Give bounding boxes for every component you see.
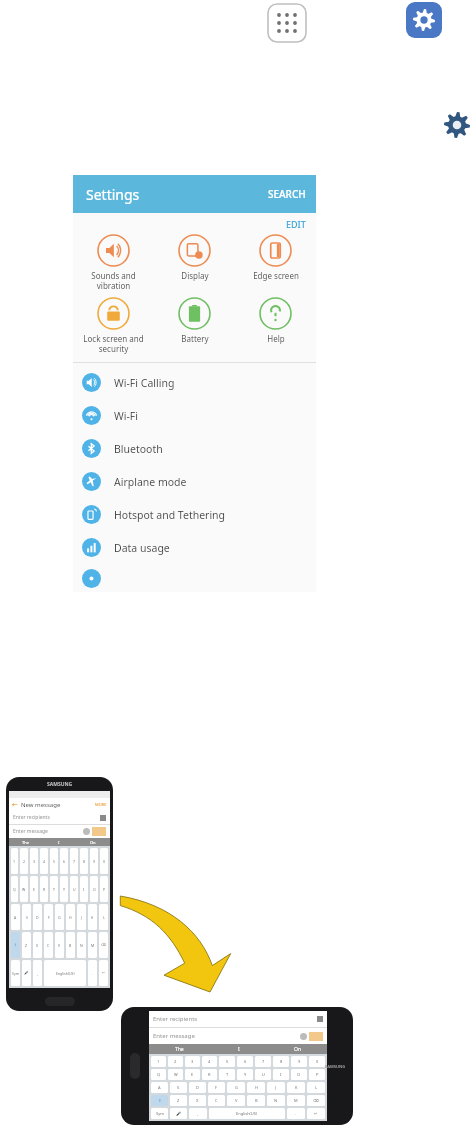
button[interactable]: H bbox=[66, 904, 75, 930]
button[interactable]: 3 bbox=[185, 1056, 200, 1067]
button[interactable]: D bbox=[33, 904, 42, 930]
button[interactable]: Apps bbox=[267, 3, 307, 43]
button[interactable]: U bbox=[70, 876, 78, 902]
button[interactable]: Sym bbox=[11, 960, 20, 986]
button[interactable]: 7 bbox=[70, 848, 78, 874]
button[interactable]: X bbox=[33, 932, 42, 958]
button[interactable]: 6 bbox=[237, 1056, 253, 1067]
button[interactable]: ⇧ bbox=[11, 932, 20, 958]
button[interactable]: M bbox=[88, 932, 97, 958]
button[interactable]: ⌫ bbox=[307, 1095, 325, 1106]
button[interactable]: 🎤 bbox=[22, 960, 31, 986]
button[interactable]: 1 bbox=[11, 848, 18, 874]
button[interactable]: Battery bbox=[154, 297, 235, 344]
button[interactable]: E bbox=[30, 876, 38, 902]
button[interactable]: X bbox=[189, 1095, 206, 1106]
button[interactable]: Wi-Fi bbox=[73, 399, 316, 432]
button[interactable]: 0 bbox=[100, 848, 108, 874]
button[interactable]: Settings bbox=[73, 175, 316, 213]
button[interactable]: EDIT bbox=[286, 218, 306, 230]
button[interactable]: 5 bbox=[219, 1056, 235, 1067]
button[interactable]: D bbox=[189, 1082, 206, 1093]
button[interactable]: Airplane mode bbox=[73, 465, 316, 498]
button[interactable]: F bbox=[208, 1082, 225, 1093]
button[interactable]: Q bbox=[11, 876, 18, 902]
button[interactable]: Phone landscape bbox=[121, 1007, 353, 1125]
button[interactable]: 8 bbox=[80, 848, 88, 874]
button[interactable]: W bbox=[20, 876, 28, 902]
button[interactable]: 2 bbox=[168, 1056, 183, 1067]
button[interactable]: 5 bbox=[50, 848, 58, 874]
button[interactable]: M bbox=[287, 1095, 305, 1106]
button[interactable]: G bbox=[55, 904, 64, 930]
button[interactable]: . bbox=[88, 960, 97, 986]
button[interactable]: Display bbox=[154, 234, 235, 281]
button[interactable]: ⌫ bbox=[99, 932, 108, 958]
button[interactable]: ↵ bbox=[307, 1108, 325, 1119]
button[interactable]: 🎤 bbox=[170, 1108, 187, 1119]
button[interactable]: F bbox=[44, 904, 53, 930]
button[interactable]: C bbox=[208, 1095, 225, 1106]
button[interactable]: Lock screen and security bbox=[73, 297, 154, 354]
button[interactable]: , bbox=[189, 1108, 207, 1119]
button[interactable]: Sounds and vibration bbox=[73, 234, 154, 291]
button[interactable]: Z bbox=[170, 1095, 187, 1106]
button[interactable]: E bbox=[185, 1069, 200, 1080]
button[interactable]: L bbox=[307, 1082, 325, 1093]
button[interactable]: A bbox=[11, 904, 20, 930]
button[interactable]: I bbox=[273, 1069, 289, 1080]
button[interactable]: O bbox=[291, 1069, 307, 1080]
button[interactable]: B bbox=[247, 1095, 265, 1106]
button[interactable]: Q bbox=[151, 1069, 166, 1080]
button[interactable]: B bbox=[66, 932, 75, 958]
button[interactable] bbox=[73, 564, 316, 592]
button[interactable]: 7 bbox=[255, 1056, 271, 1067]
button[interactable]: . bbox=[287, 1108, 305, 1119]
button[interactable]: J bbox=[77, 904, 86, 930]
button[interactable]: Settings bbox=[442, 110, 472, 140]
button[interactable]: 2 bbox=[20, 848, 28, 874]
button[interactable]: Edge screen bbox=[235, 234, 316, 281]
button[interactable]: K bbox=[88, 904, 97, 930]
button[interactable]: V bbox=[227, 1095, 245, 1106]
button[interactable]: 8 bbox=[273, 1056, 289, 1067]
button[interactable]: R bbox=[40, 876, 48, 902]
button[interactable]: Sym bbox=[151, 1108, 168, 1119]
button[interactable]: Settings bbox=[406, 2, 442, 38]
button[interactable]: English(US) bbox=[209, 1108, 285, 1119]
button[interactable]: Phone portrait bbox=[6, 777, 113, 1011]
button[interactable]: Y bbox=[237, 1069, 253, 1080]
button[interactable]: ↵ bbox=[99, 960, 108, 986]
button[interactable]: G bbox=[227, 1082, 245, 1093]
button[interactable]: Bluetooth bbox=[73, 432, 316, 465]
button[interactable]: O bbox=[90, 876, 98, 902]
button[interactable]: S bbox=[22, 904, 31, 930]
button[interactable]: Y bbox=[60, 876, 68, 902]
button[interactable]: T bbox=[50, 876, 58, 902]
button[interactable]: Help bbox=[235, 297, 316, 344]
button[interactable]: Z bbox=[22, 932, 31, 958]
button[interactable]: 6 bbox=[60, 848, 68, 874]
button[interactable]: T bbox=[219, 1069, 235, 1080]
button[interactable]: U bbox=[255, 1069, 271, 1080]
button[interactable]: English(US) bbox=[44, 960, 86, 986]
button[interactable]: S bbox=[170, 1082, 187, 1093]
button[interactable]: , bbox=[33, 960, 42, 986]
button[interactable]: N bbox=[77, 932, 86, 958]
button[interactable]: P bbox=[309, 1069, 325, 1080]
button[interactable]: J bbox=[267, 1082, 285, 1093]
button[interactable]: Data usage bbox=[73, 531, 316, 564]
button[interactable]: K bbox=[287, 1082, 305, 1093]
button[interactable]: 9 bbox=[90, 848, 98, 874]
button[interactable]: L bbox=[99, 904, 108, 930]
button[interactable]: 4 bbox=[40, 848, 48, 874]
button[interactable]: R bbox=[202, 1069, 217, 1080]
button[interactable]: Hotspot and Tethering bbox=[73, 498, 316, 531]
button[interactable]: C bbox=[44, 932, 53, 958]
button[interactable]: 0 bbox=[309, 1056, 325, 1067]
button[interactable]: N bbox=[267, 1095, 285, 1106]
button[interactable]: A bbox=[151, 1082, 168, 1093]
button[interactable]: V bbox=[55, 932, 64, 958]
button[interactable]: I bbox=[80, 876, 88, 902]
button[interactable]: P bbox=[100, 876, 108, 902]
